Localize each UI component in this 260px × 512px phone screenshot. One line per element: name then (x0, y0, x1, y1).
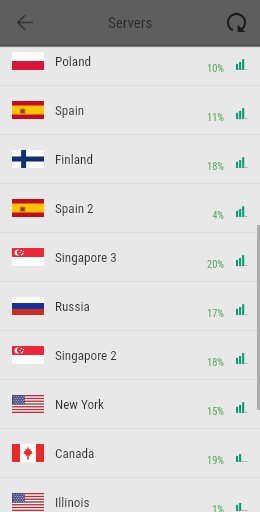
staticText: 20% (184, 258, 224, 270)
staticText: Illinois (55, 495, 90, 510)
button[interactable]: Back (6, 4, 43, 41)
staticText: 4% (184, 209, 224, 221)
button[interactable]: Singapore 2 (0, 331, 260, 380)
staticText: Finland (55, 152, 94, 167)
button[interactable]: Russia (0, 282, 260, 331)
button[interactable]: Poland (0, 37, 260, 86)
staticText: 15% (184, 405, 224, 417)
button[interactable]: Singapore 3 (0, 233, 260, 282)
staticText: Spain 2 (55, 201, 94, 216)
staticText: Poland (55, 54, 92, 69)
button[interactable]: Refresh (218, 4, 255, 41)
staticText: 19% (184, 454, 224, 466)
staticText: Servers (108, 14, 153, 32)
button[interactable]: Spain 2 (0, 184, 260, 233)
button[interactable]: Illinois (0, 478, 260, 512)
staticText: Russia (55, 299, 90, 314)
staticText: 18% (184, 160, 224, 172)
staticText: Canada (55, 446, 95, 461)
button[interactable]: Spain (0, 86, 260, 135)
staticText: 1% (184, 503, 224, 512)
staticText: 11% (184, 111, 224, 123)
staticText: 17% (184, 307, 224, 319)
button[interactable]: New York (0, 380, 260, 429)
staticText: 18% (184, 356, 224, 368)
button[interactable]: Canada (0, 429, 260, 478)
button[interactable]: Finland (0, 135, 260, 184)
staticText: New York (55, 397, 105, 412)
staticText: 10% (184, 62, 224, 74)
staticText: Spain (55, 103, 85, 118)
staticText: Singapore 3 (55, 250, 117, 265)
staticText: Singapore 2 (55, 348, 117, 363)
